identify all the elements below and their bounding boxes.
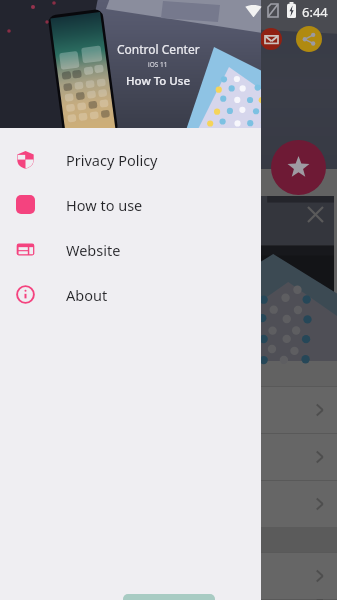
button[interactable]: Share bbox=[296, 26, 322, 52]
staticText: Website bbox=[66, 240, 121, 260]
button[interactable]: Rate bbox=[271, 140, 326, 195]
staticText: Control Center bbox=[117, 41, 200, 57]
button[interactable]: Privacy Policy bbox=[0, 137, 261, 182]
staticText: How to use bbox=[66, 195, 143, 215]
staticText: How To Use bbox=[126, 73, 191, 89]
button[interactable]: Customize Control Center bbox=[0, 434, 337, 480]
button[interactable]: Email bbox=[260, 28, 282, 50]
button[interactable] bbox=[123, 594, 215, 600]
button[interactable]: 3D Touch controls bbox=[0, 553, 337, 599]
button[interactable]: Website bbox=[0, 227, 261, 272]
staticText: About bbox=[66, 285, 108, 305]
staticText: 6:44 bbox=[302, 3, 328, 21]
staticText: iOS 11 bbox=[148, 60, 168, 69]
staticText: Privacy Policy bbox=[66, 150, 158, 170]
button[interactable]: About bbox=[0, 272, 261, 317]
button[interactable]: Close bbox=[302, 201, 328, 227]
button[interactable]: Access Control Center bbox=[0, 387, 337, 433]
button[interactable]: Use the controls bbox=[0, 481, 337, 527]
button[interactable]: How to use bbox=[0, 182, 261, 227]
